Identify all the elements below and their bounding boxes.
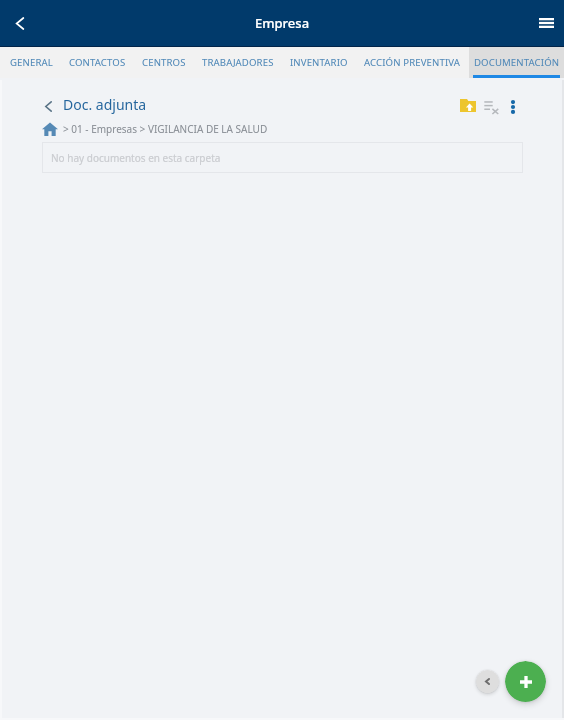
staticText: > 01 - Empresas > VIGILANCIA DE LA SALUD xyxy=(63,122,268,136)
staticText: CONTACTOS xyxy=(69,56,126,69)
button[interactable]: GENERAL xyxy=(2,47,61,78)
button[interactable]: Navigate up xyxy=(3,6,37,40)
button[interactable]: ACCIÓN PREVENTIVA xyxy=(356,47,469,78)
staticText: GENERAL xyxy=(10,56,53,69)
staticText: TRABAJADORES xyxy=(202,56,274,69)
staticText: ACCIÓN PREVENTIVA xyxy=(364,56,461,69)
staticText: Doc. adjunta xyxy=(63,95,147,114)
button[interactable]: Add document xyxy=(505,661,546,702)
staticText: CENTROS xyxy=(142,56,186,69)
button[interactable]: Upload folder xyxy=(458,95,478,115)
button[interactable]: Previous page xyxy=(476,670,499,693)
button[interactable]: TRABAJADORES xyxy=(194,47,282,78)
button[interactable]: Menu xyxy=(529,6,563,40)
button[interactable]: INVENTARIO xyxy=(282,47,356,78)
staticText: No hay documentos en esta carpeta xyxy=(51,151,221,165)
staticText: DOCUMENTACIÓN xyxy=(474,56,560,69)
button[interactable]: CENTROS xyxy=(134,47,194,78)
button[interactable]: CONTACTOS xyxy=(61,47,134,78)
button[interactable]: More options xyxy=(503,97,523,117)
staticText: Empresa xyxy=(255,14,310,32)
button[interactable]: Back xyxy=(42,96,58,112)
button[interactable]: Clear filter xyxy=(481,97,501,117)
staticText: INVENTARIO xyxy=(290,56,348,69)
button[interactable]: DOCUMENTACIÓN xyxy=(469,47,564,78)
